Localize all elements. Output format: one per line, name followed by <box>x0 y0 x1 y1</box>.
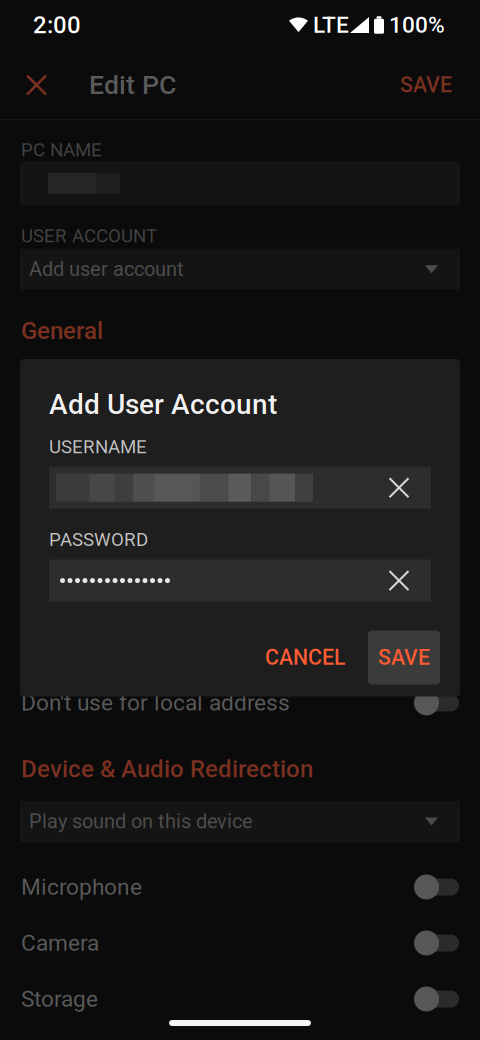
button[interactable]: SAVE <box>386 56 466 114</box>
staticText: Storage <box>21 986 98 1012</box>
staticText: Edit PC <box>89 69 176 101</box>
staticText: Camera <box>21 930 99 956</box>
staticText: SAVE <box>378 645 430 670</box>
button[interactable]: Microphone <box>0 859 480 915</box>
staticText: Add user account <box>29 257 184 281</box>
button[interactable]: Don't use for local address <box>0 683 480 723</box>
button[interactable]: Add user account <box>20 249 460 290</box>
button[interactable]: Clear username <box>378 467 420 509</box>
staticText: Don't use for local address <box>21 690 290 716</box>
staticText: PC NAME <box>21 139 102 161</box>
staticText: USERNAME <box>49 436 147 458</box>
button[interactable]: Camera <box>0 915 480 971</box>
staticText: LTE <box>313 12 349 38</box>
button[interactable]: SAVE <box>368 631 440 685</box>
staticText: Device & Audio Redirection <box>21 755 313 783</box>
staticText: PASSWORD <box>49 529 148 551</box>
staticText: Add User Account <box>49 388 277 421</box>
staticText: 2:00 <box>33 11 81 39</box>
staticText: 100% <box>389 12 445 38</box>
staticText: USER ACCOUNT <box>21 225 157 247</box>
staticText: Microphone <box>21 874 142 900</box>
staticText: Play sound on this device <box>29 810 253 833</box>
staticText: General <box>21 317 103 345</box>
button[interactable]: Play sound on this device <box>20 801 460 842</box>
button[interactable]: Clear password <box>378 560 420 602</box>
button[interactable]: CANCEL <box>251 636 360 680</box>
staticText: CANCEL <box>265 645 346 670</box>
button[interactable]: Storage <box>0 971 480 1027</box>
staticText: SAVE <box>400 72 452 97</box>
button[interactable]: Close <box>14 56 59 114</box>
